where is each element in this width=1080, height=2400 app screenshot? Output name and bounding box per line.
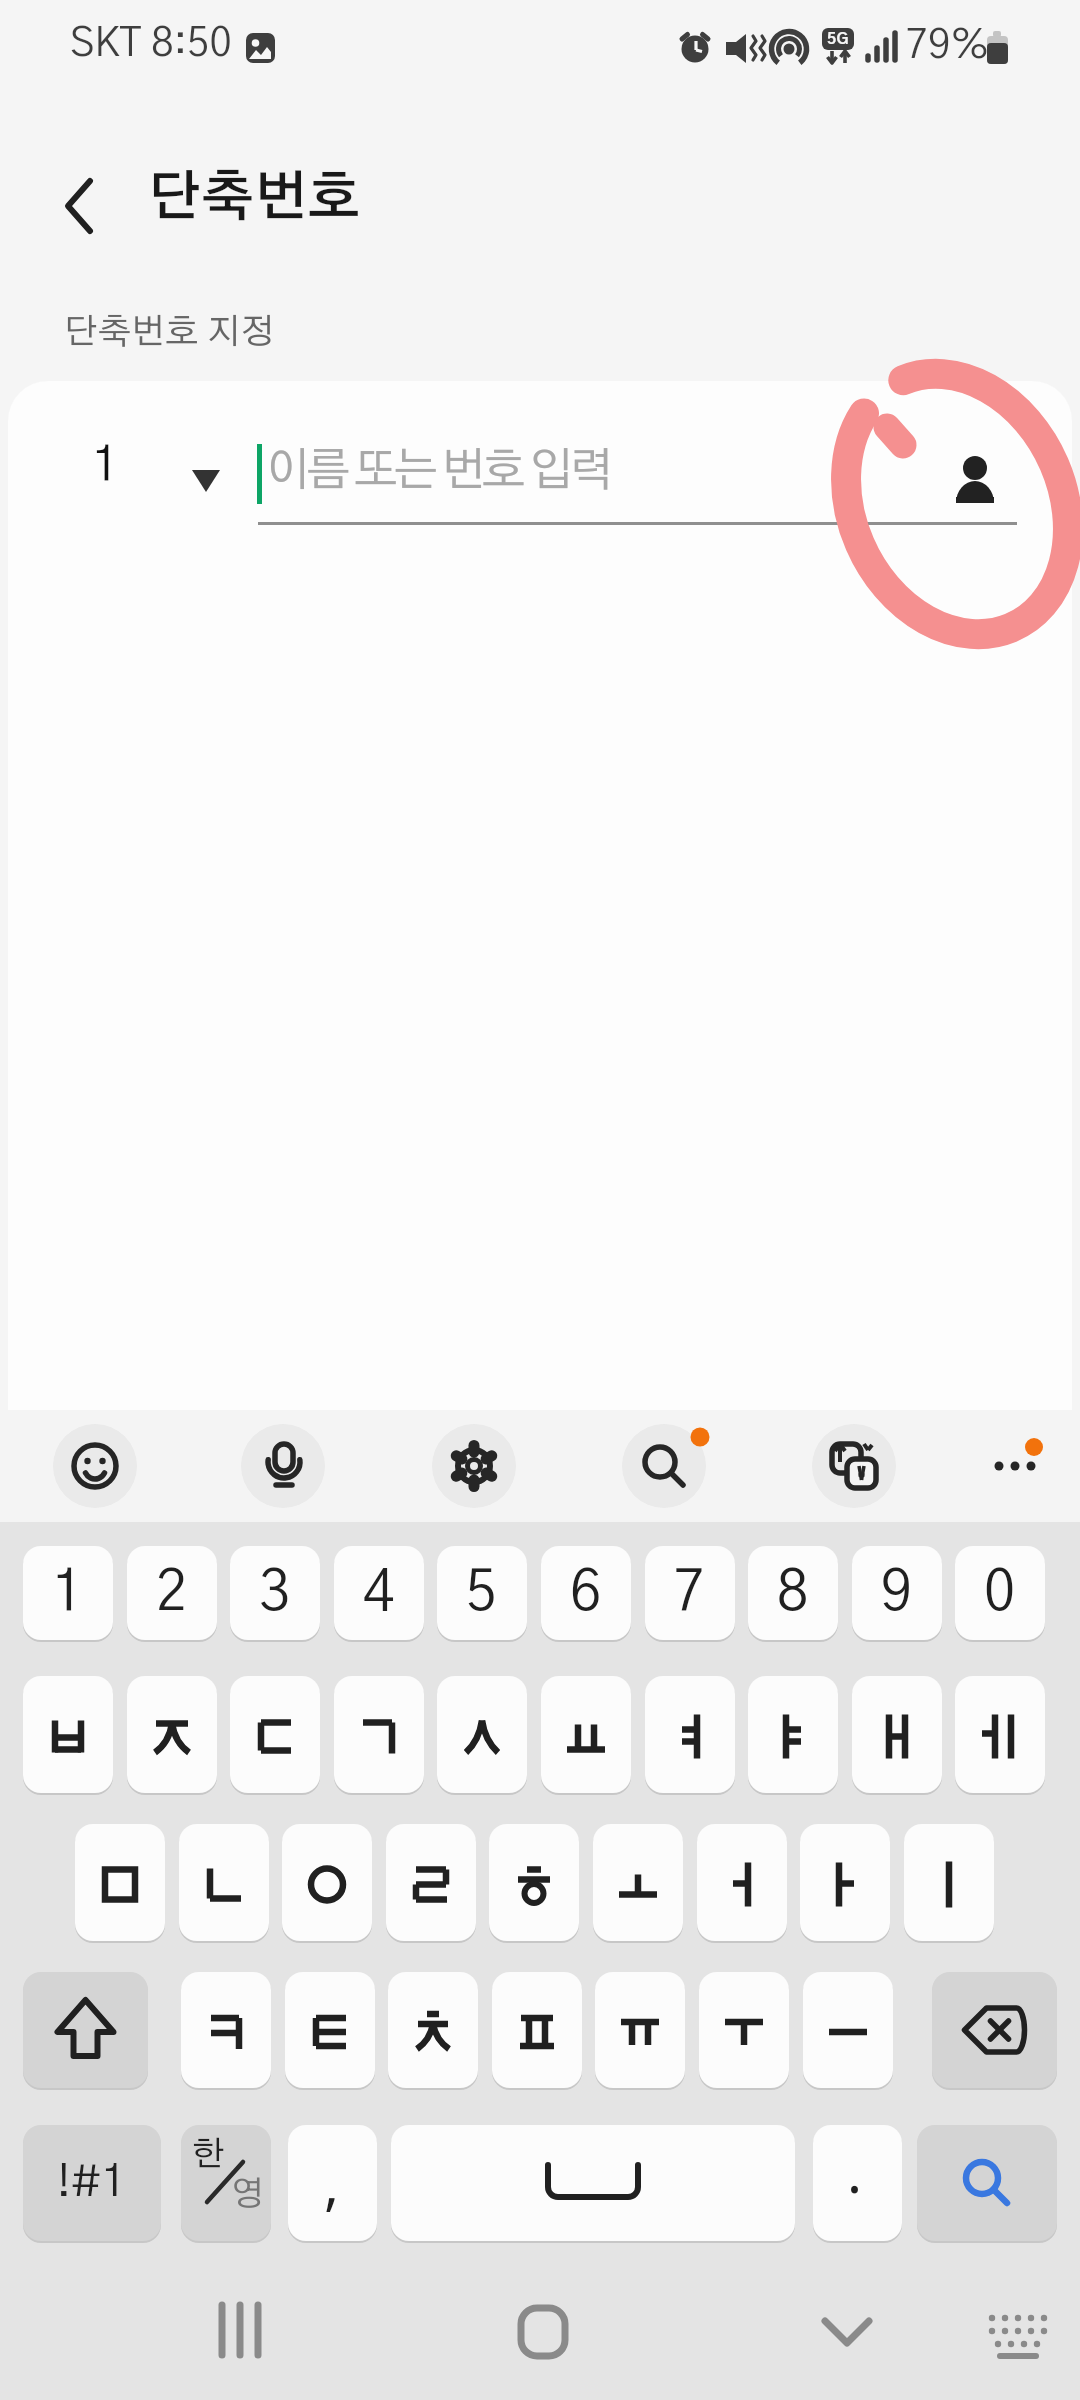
button[interactable] (75, 1824, 165, 1941)
staticText: 9 (881, 1565, 913, 1621)
button[interactable] (23, 1676, 113, 1793)
button[interactable] (386, 1824, 476, 1941)
button[interactable]: 1 (64, 430, 244, 530)
staticText: 3 (259, 1565, 291, 1621)
button[interactable] (595, 1972, 685, 2088)
button[interactable] (699, 1972, 789, 2088)
staticText: 단축번호 (148, 172, 361, 226)
staticText: 1 (92, 442, 119, 490)
button[interactable] (973, 1424, 1057, 1508)
button[interactable] (230, 1676, 320, 1793)
button[interactable]: 1 (23, 1546, 113, 1640)
staticText: 8 (777, 1565, 809, 1621)
button[interactable]: !#1 (23, 2125, 161, 2241)
staticText: 단축번호 지정 (64, 315, 275, 350)
staticText: 한 (192, 2138, 225, 2172)
staticText: 0 (984, 1565, 1016, 1621)
staticText: 7 (674, 1565, 706, 1621)
button[interactable]: 5 (437, 1546, 527, 1640)
button[interactable] (800, 1824, 890, 1941)
button[interactable] (500, 2290, 584, 2374)
button[interactable] (932, 1972, 1057, 2088)
button[interactable] (388, 1972, 478, 2088)
button[interactable] (53, 1424, 137, 1508)
staticText: 6 (570, 1565, 602, 1621)
button[interactable] (437, 1676, 527, 1793)
staticText: 5G (827, 31, 849, 47)
button[interactable] (492, 1972, 582, 2088)
button[interactable] (391, 2125, 795, 2241)
button[interactable] (804, 2290, 888, 2374)
button[interactable] (48, 170, 120, 242)
button[interactable] (241, 1424, 325, 1508)
button[interactable] (285, 1972, 375, 2088)
button[interactable]: 0 (955, 1546, 1045, 1640)
button[interactable] (645, 1676, 735, 1793)
button[interactable] (181, 1972, 271, 2088)
button[interactable] (748, 1676, 838, 1793)
button[interactable]: 7 (645, 1546, 735, 1640)
button[interactable] (334, 1676, 424, 1793)
staticText: 79% (906, 26, 990, 66)
button[interactable] (23, 1972, 148, 2088)
button[interactable]: 2 (127, 1546, 217, 1640)
button[interactable]: 6 (541, 1546, 631, 1640)
staticText: 2 (156, 1565, 188, 1621)
button[interactable] (697, 1824, 787, 1941)
button[interactable]: , (288, 2125, 377, 2241)
button[interactable]: 3 (230, 1546, 320, 1640)
button[interactable] (127, 1676, 217, 1793)
staticText: !#1 (57, 2161, 127, 2205)
button[interactable]: 한 (181, 2125, 271, 2241)
staticText: 이름 또는 번호 입력 (266, 448, 610, 494)
staticText: 5 (466, 1565, 498, 1621)
button[interactable]: 8 (748, 1546, 838, 1640)
button[interactable] (917, 2125, 1057, 2241)
button[interactable] (976, 2290, 1060, 2374)
button[interactable] (852, 1676, 942, 1793)
button[interactable]: 4 (334, 1546, 424, 1640)
button[interactable] (812, 1424, 896, 1508)
button[interactable] (803, 1972, 893, 2088)
button[interactable] (622, 1424, 706, 1508)
button[interactable] (282, 1824, 372, 1941)
staticText: , (324, 2145, 340, 2221)
button[interactable] (904, 1824, 994, 1941)
staticText: 1 (52, 1565, 84, 1621)
button[interactable] (489, 1824, 579, 1941)
button[interactable] (200, 2290, 284, 2374)
button[interactable] (432, 1424, 516, 1508)
staticText: 4 (363, 1565, 395, 1621)
button[interactable] (593, 1824, 683, 1941)
button[interactable] (541, 1676, 631, 1793)
button[interactable] (179, 1824, 269, 1941)
button[interactable]: 9 (852, 1546, 942, 1640)
staticText: 영 (231, 2178, 264, 2212)
button[interactable] (955, 1676, 1045, 1793)
staticText: . (847, 2133, 863, 2209)
staticText: SKT 8:50 (70, 24, 232, 64)
button[interactable] (945, 445, 1007, 515)
button[interactable]: . (813, 2125, 902, 2241)
